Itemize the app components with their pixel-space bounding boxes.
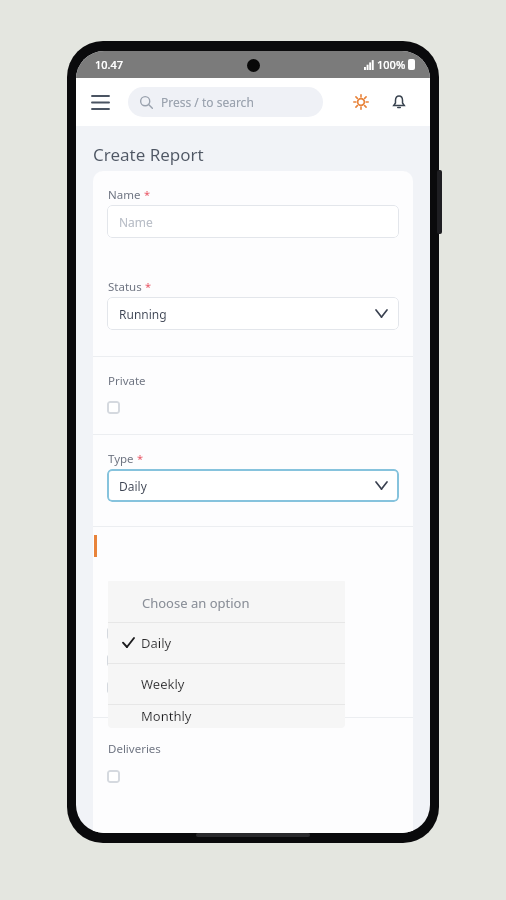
button[interactable]: Sunday	[107, 677, 168, 698]
staticText: Monthly	[141, 707, 192, 725]
staticText: Create Report	[93, 143, 204, 166]
button[interactable]: Daily	[107, 469, 399, 502]
button[interactable]: Theme	[346, 87, 376, 117]
staticText: Name	[108, 187, 141, 203]
button[interactable]: Name	[107, 205, 399, 238]
staticText: *	[145, 279, 152, 294]
staticText: Daily	[141, 634, 172, 652]
button[interactable]: Friday	[107, 623, 162, 644]
staticText: Type	[108, 451, 134, 467]
staticText: Choose an option	[142, 594, 250, 612]
button[interactable]: Menu	[84, 86, 116, 118]
staticText: Weekly	[141, 675, 185, 693]
button[interactable]	[107, 766, 120, 787]
button[interactable]: Monthly	[108, 704, 345, 728]
staticText: Status	[108, 279, 142, 295]
staticText: *	[137, 451, 144, 466]
button[interactable]: Notifications	[384, 87, 414, 117]
staticText: Running	[119, 306, 167, 322]
staticText: 10.47	[95, 57, 124, 72]
staticText: *	[144, 187, 151, 202]
staticText: Private	[108, 373, 146, 389]
staticText: Saturday	[128, 653, 176, 669]
staticText: Daily	[119, 478, 147, 494]
staticText: 100%	[377, 57, 406, 72]
button[interactable]: Weekly	[108, 663, 345, 704]
button[interactable]: Press / to search	[128, 87, 323, 117]
button[interactable]: Daily	[108, 622, 345, 663]
staticText: Press / to search	[161, 94, 254, 110]
button[interactable]: Running	[107, 297, 399, 330]
button[interactable]: Saturday	[107, 650, 176, 671]
staticText: Name	[119, 214, 153, 230]
staticText: Friday	[128, 626, 162, 642]
button[interactable]	[107, 397, 120, 418]
staticText: Sunday	[128, 680, 168, 696]
staticText: Deliveries	[108, 741, 161, 757]
